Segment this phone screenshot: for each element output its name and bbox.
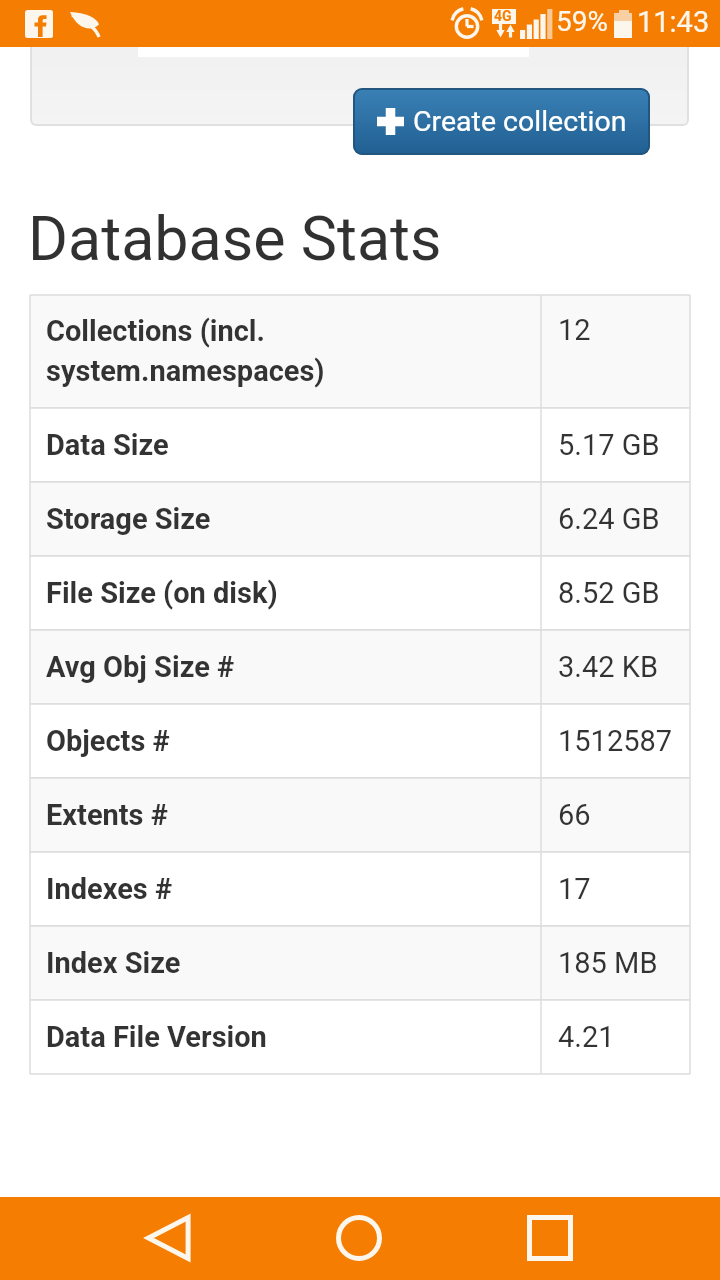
staticText: 4.21 — [558, 1020, 615, 1054]
staticText: Data File Version — [46, 1020, 267, 1054]
button[interactable]: Back — [129, 1198, 209, 1278]
staticText: Extents # — [46, 798, 168, 832]
button[interactable]: Storage Size — [30, 482, 690, 556]
staticText: Database Stats — [28, 203, 442, 274]
button[interactable]: Data Size — [30, 408, 690, 482]
staticText: Indexes # — [46, 872, 173, 906]
staticText: 6.24 GB — [558, 502, 660, 536]
button[interactable]: Objects # — [30, 704, 690, 778]
button[interactable]: Avg Obj Size # — [30, 630, 690, 704]
staticText: 17 — [558, 872, 591, 906]
staticText: 66 — [558, 798, 591, 832]
staticText: 59% — [556, 5, 608, 38]
button[interactable]: Extents # — [30, 778, 690, 852]
button[interactable]: Indexes # — [30, 852, 690, 926]
button[interactable]: Home — [319, 1198, 399, 1278]
staticText: 5.17 GB — [558, 428, 660, 462]
button[interactable]: Create collection — [353, 88, 650, 155]
button[interactable]: Index Size — [30, 926, 690, 1000]
staticText: Index Size — [46, 946, 181, 980]
button[interactable]: Collections (incl. system.namespaces) — [30, 295, 690, 408]
staticText: Objects # — [46, 724, 170, 758]
staticText: 12 — [558, 313, 591, 347]
staticText: 185 MB — [558, 946, 658, 980]
staticText: Collections (incl. system.namespaces) — [46, 314, 325, 389]
staticText: 8.52 GB — [558, 576, 660, 610]
staticText: Avg Obj Size # — [46, 650, 235, 684]
button[interactable]: File Size (on disk) — [30, 556, 690, 630]
staticText: File Size (on disk) — [46, 576, 278, 610]
button[interactable]: Recent apps — [510, 1198, 590, 1278]
staticText: Data Size — [46, 428, 169, 462]
staticText: 1512587 — [558, 724, 673, 758]
staticText: 4G — [494, 8, 512, 24]
staticText: Create collection — [413, 105, 627, 138]
staticText: 11:43 — [637, 5, 710, 39]
staticText: 3.42 KB — [558, 650, 658, 684]
button[interactable]: Data File Version — [30, 1000, 690, 1074]
staticText: Storage Size — [46, 502, 211, 536]
